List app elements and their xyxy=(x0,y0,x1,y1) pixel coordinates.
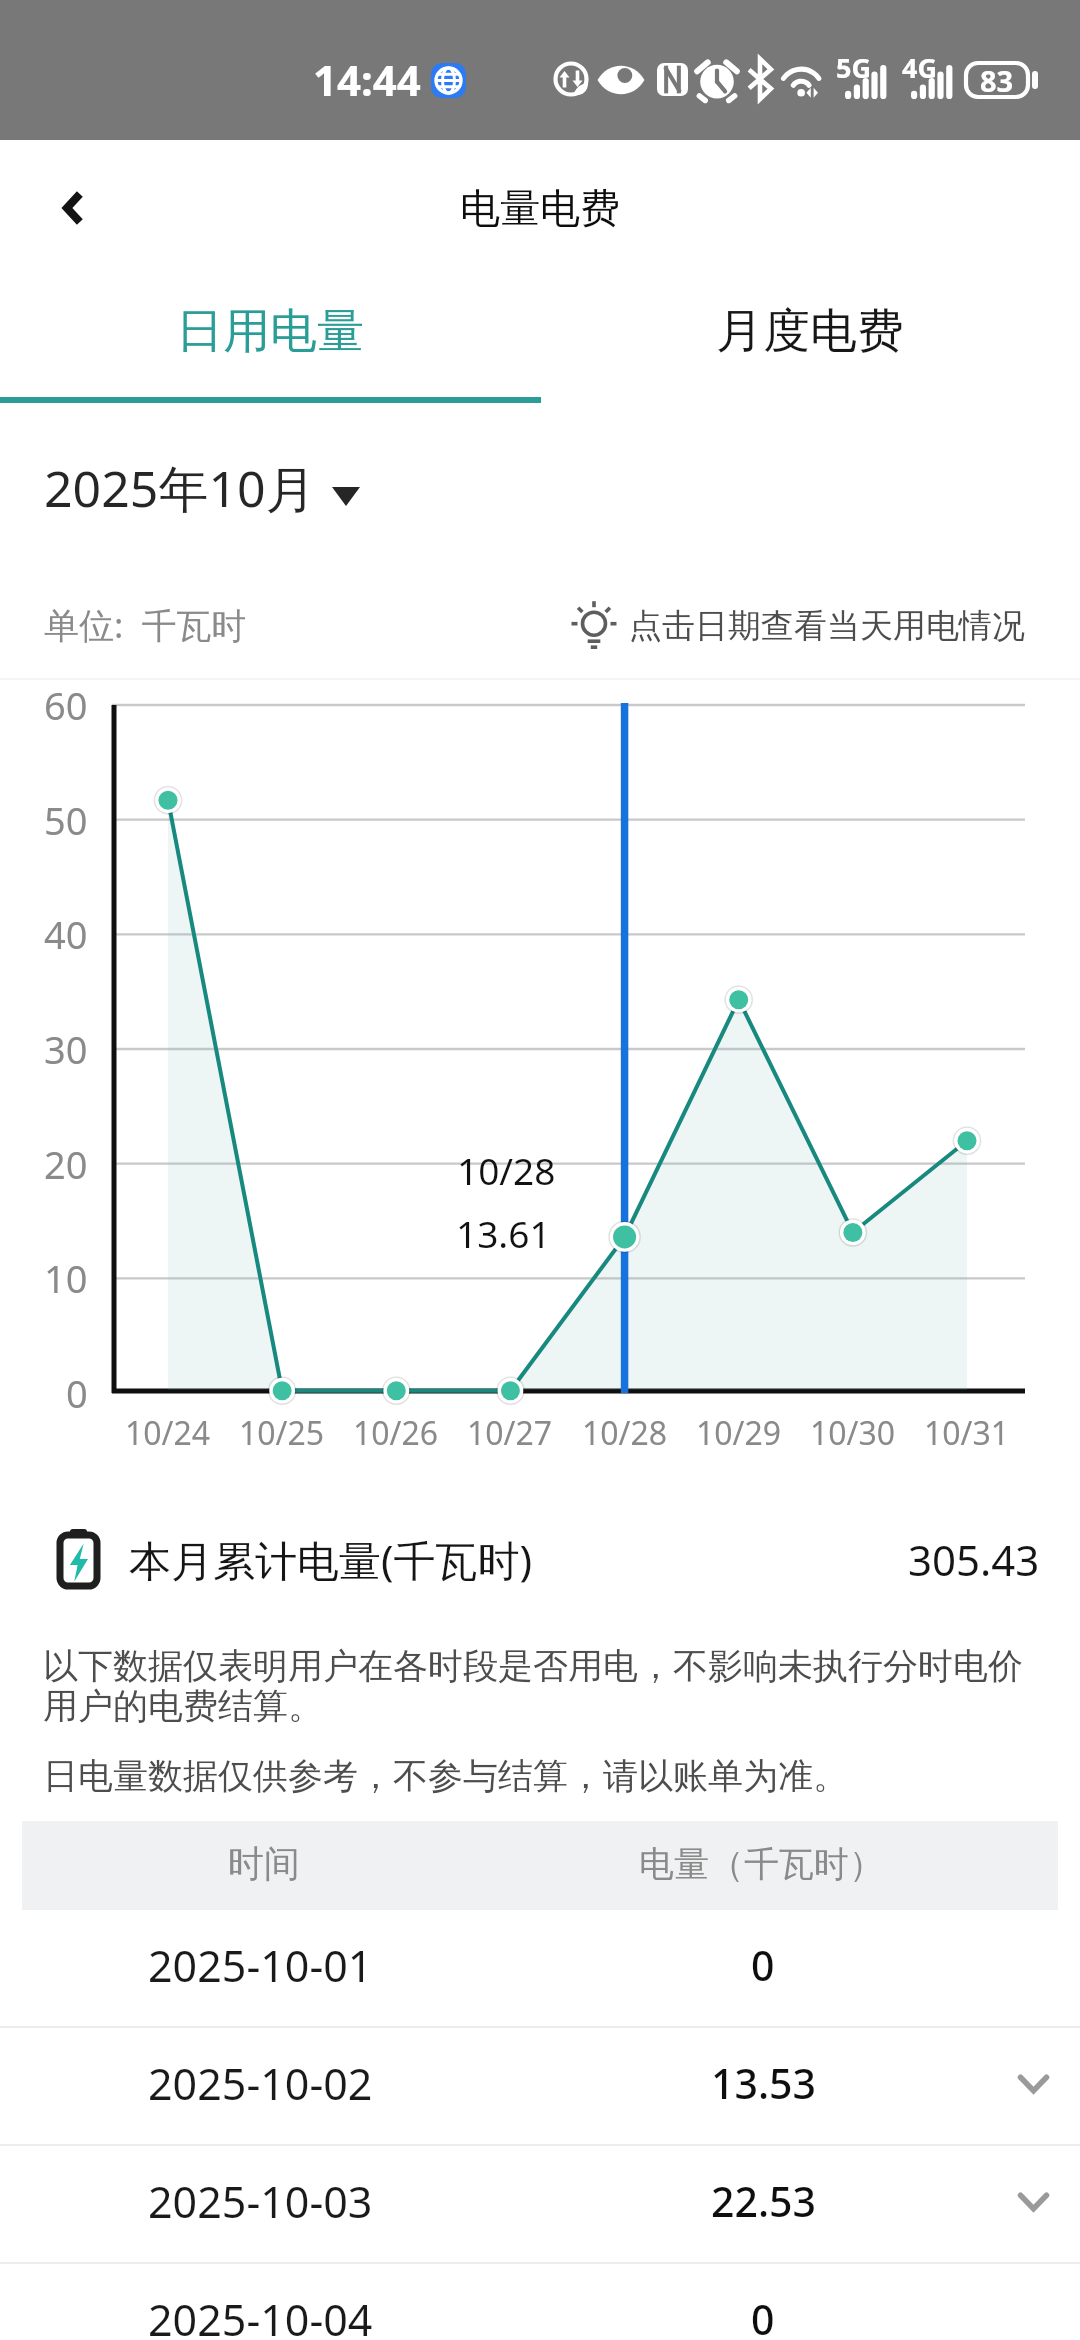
staticText: 2025-10-02 xyxy=(148,2054,373,2113)
staticText: 4G xyxy=(902,49,937,86)
staticText: 本月累计电量(千瓦时) xyxy=(129,1531,533,1588)
button[interactable]: 2025-10-03 xyxy=(0,2146,1080,2264)
staticText: 305.43 xyxy=(908,1531,1040,1588)
staticText: 2025-10-04 xyxy=(148,2290,373,2340)
staticText: 10/31 xyxy=(924,1411,1010,1455)
button[interactable]: 10/27 xyxy=(453,700,567,1459)
button[interactable]: 10/30 xyxy=(796,700,910,1459)
button[interactable]: 2025-10-01 xyxy=(0,1910,1080,2028)
staticText: 2025-10-01 xyxy=(148,1936,373,1995)
button[interactable]: 10/31 xyxy=(910,700,1024,1459)
button[interactable]: 10/25 xyxy=(225,700,339,1459)
staticText: 10/25 xyxy=(239,1411,325,1455)
staticText: 日用电量 xyxy=(176,302,364,361)
staticText: 83 xyxy=(980,61,1014,99)
button[interactable]: Back xyxy=(29,164,117,252)
staticText: 10 xyxy=(44,1252,88,1304)
staticText: 60 xyxy=(44,679,88,731)
staticText: 40 xyxy=(44,908,88,960)
staticText: 以下数据仅表明用户在各时段是否用电，不影响未执行分时电价 用户的电费结算。 xyxy=(43,1644,1023,1728)
button[interactable]: 2025年10月 xyxy=(30,446,374,530)
staticText: 30 xyxy=(44,1023,88,1075)
button[interactable]: 10/24 xyxy=(111,700,225,1459)
button[interactable]: 2025-10-02 xyxy=(0,2028,1080,2146)
staticText: 10/26 xyxy=(353,1411,439,1455)
staticText: 2025-10-03 xyxy=(148,2172,373,2231)
button[interactable]: 10/28 xyxy=(568,700,682,1459)
staticText: 单位: 千瓦时 xyxy=(44,601,247,649)
button[interactable]: 10/29 xyxy=(682,700,796,1459)
staticText: 0 xyxy=(66,1367,88,1419)
staticText: 20 xyxy=(44,1138,88,1190)
staticText: 时间 xyxy=(228,1841,300,1886)
staticText: 2025年10月 xyxy=(44,454,316,522)
button[interactable]: 2025-10-04 xyxy=(0,2264,1080,2340)
staticText: 0 xyxy=(751,1937,775,1993)
staticText: 50 xyxy=(44,794,88,846)
staticText: 电量（千瓦时） xyxy=(639,1842,884,1886)
staticText: 10/24 xyxy=(125,1411,211,1455)
staticText: 14:44 xyxy=(313,51,421,108)
staticText: 13.61 xyxy=(456,1208,551,1258)
staticText: 10/28 xyxy=(457,1145,556,1195)
staticText: 10/28 xyxy=(582,1411,668,1455)
staticText: 10/27 xyxy=(467,1411,553,1455)
staticText: 日电量数据仅供参考，不参与结算，请以账单为准。 xyxy=(43,1754,848,1798)
staticText: 点击日期查看当天用电情况 xyxy=(629,605,1025,647)
button[interactable]: 月度电费 xyxy=(610,267,1010,395)
staticText: 22.53 xyxy=(711,2173,816,2229)
staticText: 月度电费 xyxy=(716,302,904,361)
staticText: 10/30 xyxy=(810,1411,896,1455)
staticText: 13.53 xyxy=(711,2055,816,2111)
button[interactable]: 10/26 xyxy=(339,700,453,1459)
button[interactable]: 日用电量 xyxy=(70,267,470,395)
staticText: 0 xyxy=(751,2291,775,2340)
staticText: 5G xyxy=(836,49,871,86)
staticText: 10/29 xyxy=(696,1411,782,1455)
staticText: 电量电费 xyxy=(460,183,620,233)
